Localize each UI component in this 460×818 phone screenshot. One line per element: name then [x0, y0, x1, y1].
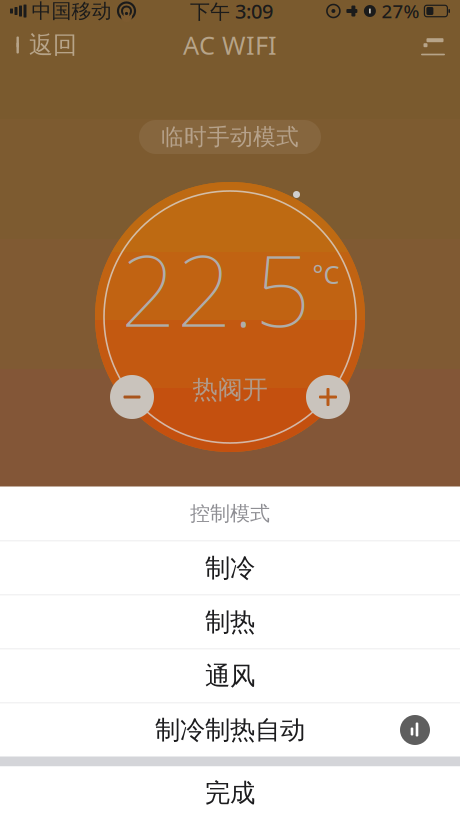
staticText: 制冷制热自动 — [155, 714, 305, 745]
staticText: 22.5 — [120, 223, 310, 354]
staticText: 中国移动 — [31, 0, 111, 23]
button[interactable]: 完成 — [0, 766, 460, 818]
staticText: 通风 — [205, 660, 255, 691]
staticText: 返回 — [29, 30, 77, 60]
staticText: 制热 — [205, 606, 255, 637]
staticText: 制冷 — [205, 552, 255, 583]
button[interactable]: 升高温度 — [304, 373, 352, 421]
button[interactable]: 制冷制热自动 — [0, 703, 460, 756]
button[interactable]: 临时手动模式 — [139, 120, 321, 154]
staticText: 27% — [381, 0, 419, 23]
button[interactable]: 降低温度 — [108, 373, 156, 421]
staticText: AC WIFI — [183, 28, 277, 62]
staticText: 临时手动模式 — [161, 123, 299, 151]
staticText: °C — [312, 257, 339, 291]
staticText: 下午 3:09 — [190, 0, 273, 24]
staticText: 热阀开 — [192, 374, 267, 405]
button[interactable]: 制热 — [0, 595, 460, 648]
button[interactable]: 通风 — [0, 649, 460, 702]
button[interactable]: 制冷 — [0, 541, 460, 594]
staticText: 控制模式 — [190, 501, 270, 526]
button[interactable]: 返回 — [0, 23, 89, 67]
button[interactable]: 编辑 — [406, 23, 460, 67]
staticText: 完成 — [205, 777, 255, 808]
